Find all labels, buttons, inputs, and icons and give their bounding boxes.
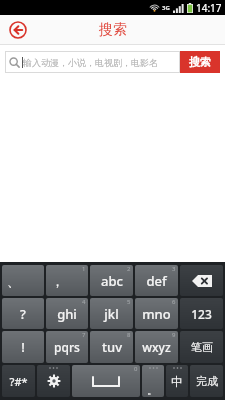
staticText: 123 (191, 306, 212, 322)
staticText: 7 (82, 331, 86, 339)
button[interactable]: 搜索 (180, 51, 220, 73)
button[interactable]: Space (72, 365, 140, 397)
button[interactable]: Delete (180, 265, 223, 296)
staticText: 输入动漫，小说，电视剧，电影名 (23, 57, 158, 68)
staticText: wxyz (142, 339, 171, 355)
button[interactable]: 完成 (190, 365, 223, 397)
staticText: ?#* (9, 374, 28, 389)
staticText: def (146, 272, 167, 290)
button[interactable]: 输入动漫，小说，电视剧，电影名 (5, 51, 180, 73)
button[interactable]: 6 (135, 298, 178, 329)
staticText: 笔画 (191, 340, 213, 354)
staticText: 。 (147, 384, 157, 397)
button[interactable]: ? (2, 298, 44, 329)
staticText: 5 (127, 298, 131, 306)
staticText: 9 (172, 331, 176, 339)
staticText: 搜索 (189, 55, 211, 69)
button[interactable]: 123 (180, 298, 223, 329)
button[interactable]: ?#* (2, 365, 35, 397)
staticText: 14:17 (196, 1, 222, 15)
staticText: ， (51, 273, 64, 289)
staticText: 完成 (196, 374, 218, 388)
button[interactable]: 笔画 (180, 331, 223, 363)
button[interactable]: ! (2, 331, 44, 363)
staticText: 、 (7, 273, 20, 289)
button[interactable]: 2 (90, 265, 133, 296)
button[interactable]: 。 (142, 365, 164, 397)
button[interactable]: 8 (90, 331, 133, 363)
button[interactable]: 9 (135, 331, 178, 363)
staticText: 3G (162, 4, 170, 12)
staticText: ghi (57, 305, 77, 323)
button[interactable]: 7 (46, 331, 88, 363)
button[interactable]: 中 (166, 365, 188, 397)
button[interactable]: 3 (135, 265, 178, 296)
staticText: tuv (102, 338, 122, 356)
staticText: 4 (82, 298, 86, 306)
staticText: 8 (127, 331, 131, 339)
staticText: 0 (134, 365, 138, 373)
staticText: ? (20, 305, 26, 323)
staticText: jkl (104, 305, 119, 323)
staticText: mno (142, 305, 171, 323)
button[interactable]: 、 (2, 265, 44, 296)
button[interactable]: 1 (46, 265, 88, 296)
staticText: pqrs (54, 339, 80, 355)
staticText: 1 (82, 265, 86, 273)
staticText: 3 (172, 265, 176, 273)
staticText: ! (21, 338, 25, 356)
staticText: 中 (171, 374, 183, 389)
staticText: 6 (172, 298, 176, 306)
button[interactable]: 4 (46, 298, 88, 329)
button[interactable]: Back (7, 19, 29, 41)
button[interactable]: 5 (90, 298, 133, 329)
button[interactable]: Settings (37, 365, 70, 397)
staticText: 2 (127, 265, 131, 273)
staticText: 搜索 (99, 21, 127, 39)
staticText: abc (101, 272, 123, 290)
